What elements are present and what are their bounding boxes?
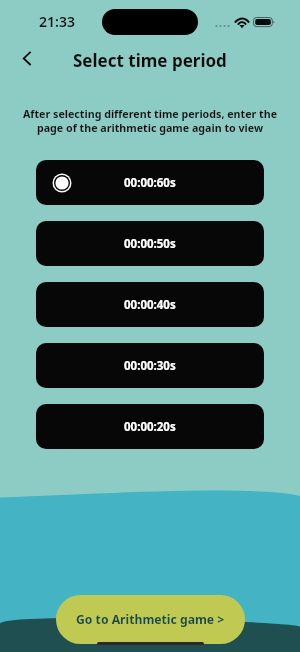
button[interactable]: 00:00:20s xyxy=(36,404,264,449)
button[interactable]: Go to Arithmetic game > xyxy=(56,595,245,644)
button[interactable]: Back xyxy=(14,47,40,73)
button[interactable]: 00:00:30s xyxy=(36,343,264,388)
button[interactable]: 00:00:40s xyxy=(36,282,264,327)
staticText: Go to Arithmetic game > xyxy=(76,611,225,628)
staticText: After selecting different time periods, … xyxy=(0,107,300,135)
staticText: 00:00:40s xyxy=(124,297,176,313)
staticText: 00:00:50s xyxy=(124,236,176,252)
staticText: 00:00:30s xyxy=(124,358,176,374)
staticText: 00:00:20s xyxy=(124,419,176,435)
staticText: 00:00:60s xyxy=(124,175,176,191)
staticText: Select time period xyxy=(73,49,227,72)
staticText: 21:33 xyxy=(39,12,75,31)
button[interactable]: 00:00:60s xyxy=(36,160,264,205)
button[interactable]: 00:00:50s xyxy=(36,221,264,266)
